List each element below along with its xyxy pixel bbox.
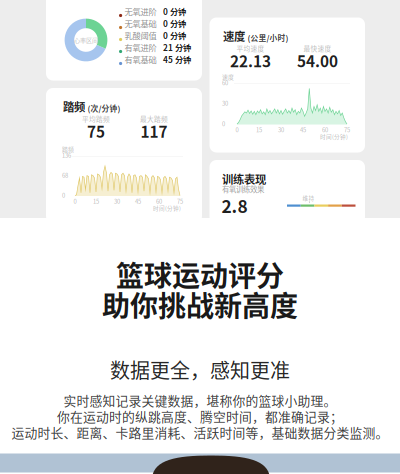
staticText: 无氧进阶 [124,5,156,17]
staticText: 0 [62,191,65,199]
staticText: 0 分钟 [163,17,186,29]
staticText: 最快速度 [303,43,331,53]
staticText: 0 [73,197,76,205]
staticText: 数据更全，感知更准 [110,355,290,384]
staticText: 15 [256,125,262,134]
staticText: 心率区间 [74,36,98,44]
staticText: 0 分钟 [163,29,186,41]
staticText: (次/分钟) [87,102,120,114]
staticText: 运动时长、距离、卡路里消耗、活跃时间等，基础数据分类监测。 [11,423,388,441]
staticText: 117 [140,120,167,142]
staticText: 速度 [223,27,245,44]
staticText: 0 [235,125,238,134]
staticText: 篮球运动评分 [116,254,284,294]
staticText: 68 [62,171,68,179]
staticText: 45 [300,125,306,134]
staticText: 平均踏频 [82,114,110,124]
staticText: 0 [222,119,225,128]
staticText: 踏频 [62,145,74,153]
staticText: 22.13 [230,49,271,72]
staticText: 60 [156,197,162,205]
staticText: 15 [93,197,99,205]
staticText: 30 [114,197,120,205]
staticText: 速度 [222,72,234,81]
staticText: 45 [135,197,141,205]
staticText: 2.8 [221,193,247,218]
staticText: 75 [177,197,183,205]
staticText: 实时感知记录关键数据，堪称你的篮球小助理。 [63,391,336,409]
staticText: 最大踏频 [140,114,168,124]
staticText: 无氧基础 [124,17,156,29]
staticText: 60 [222,78,228,87]
staticText: 时间(分钟) [320,132,348,141]
staticText: 0 分钟 [163,5,186,17]
staticText: 有氧训练效果 [222,183,264,194]
staticText: 有氧基础 [124,53,156,65]
staticText: 乳酸阈值 [124,29,156,41]
staticText: 训练表现 [222,170,266,187]
staticText: 助你挑战新高度 [102,284,298,324]
staticText: 平均速度 [236,43,264,53]
staticText: (公里/小时) [247,32,288,43]
staticText: 时间(分钟) [153,204,181,212]
staticText: 30 [278,125,284,134]
staticText: 54.00 [297,49,338,72]
staticText: 踏频 [63,98,85,114]
staticText: 你在运动时的纵跳高度、腾空时间，都准确记录； [57,407,343,425]
staticText: 45 分钟 [163,53,191,65]
staticText: 21 分钟 [163,41,191,53]
staticText: 75 [344,125,350,134]
staticText: 60 [322,125,328,134]
staticText: 维持 [302,194,314,202]
staticText: 30 [222,99,228,107]
staticText: 75 [87,120,105,142]
staticText: 有氧进阶 [124,41,156,53]
staticText: 136 [62,151,71,159]
